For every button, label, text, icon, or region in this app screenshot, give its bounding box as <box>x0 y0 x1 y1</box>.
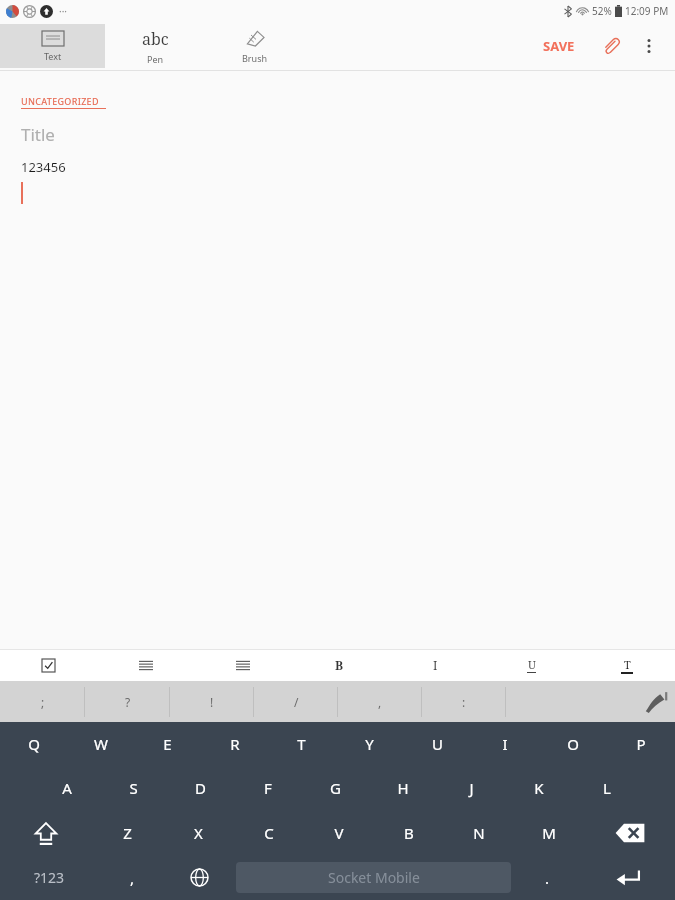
button[interactable]: P <box>607 722 675 766</box>
button[interactable]: Q <box>0 722 67 766</box>
button[interactable]: ? <box>85 681 170 722</box>
button[interactable]: UNCATEGORIZED <box>21 95 106 109</box>
button[interactable]: Format check <box>0 649 97 681</box>
button[interactable]: abc <box>105 24 205 68</box>
button[interactable]: Format I <box>387 649 483 681</box>
button[interactable]: Enter <box>581 855 675 900</box>
button[interactable]: B <box>374 810 444 855</box>
button[interactable]: G <box>301 766 369 810</box>
button[interactable]: Attach <box>595 30 627 62</box>
button[interactable]: O <box>539 722 607 766</box>
staticText: . <box>545 868 550 888</box>
staticText: F <box>264 778 272 798</box>
staticText: U <box>528 657 536 672</box>
staticText: ?123 <box>34 868 65 887</box>
button[interactable]: , <box>99 855 166 900</box>
staticText: M <box>542 823 556 843</box>
button[interactable]: / <box>254 681 338 722</box>
staticText: Title <box>21 123 55 146</box>
button[interactable]: V <box>304 810 374 855</box>
staticText: C <box>264 823 274 843</box>
staticText: J <box>469 778 474 798</box>
staticText: Text <box>44 50 62 62</box>
staticText: R <box>230 734 240 754</box>
button[interactable]: H <box>369 766 437 810</box>
staticText: T <box>624 657 631 672</box>
button[interactable]: ; <box>0 681 85 722</box>
button[interactable]: . <box>514 855 581 900</box>
button[interactable]: W <box>67 722 134 766</box>
button[interactable]: Format U <box>483 649 579 681</box>
button[interactable]: E <box>134 722 201 766</box>
staticText: K <box>534 778 544 798</box>
button[interactable]: Format list2 <box>194 649 291 681</box>
staticText: B <box>404 823 414 843</box>
staticText: V <box>334 823 344 843</box>
button[interactable]: K <box>505 766 573 810</box>
staticText: B <box>335 657 344 673</box>
button[interactable]: Shift <box>0 810 92 855</box>
staticText: O <box>567 734 579 754</box>
staticText: S <box>129 778 138 798</box>
button[interactable]: J <box>437 766 505 810</box>
staticText: I <box>502 734 508 754</box>
button[interactable]: Format list1 <box>97 649 194 681</box>
button[interactable]: Backspace <box>584 810 675 855</box>
button[interactable]: R <box>201 722 268 766</box>
button[interactable]: ! <box>170 681 254 722</box>
button[interactable]: Handwriting <box>506 681 675 722</box>
staticText: UNCATEGORIZED <box>21 95 99 107</box>
staticText: D <box>195 778 206 798</box>
button[interactable]: S <box>100 766 167 810</box>
staticText: N <box>473 823 485 843</box>
staticText: Brush <box>242 52 268 64</box>
staticText: A <box>62 778 72 798</box>
staticText: 52% <box>592 4 612 18</box>
button[interactable]: Y <box>335 722 403 766</box>
button[interactable]: U <box>403 722 471 766</box>
button[interactable]: Change language <box>166 855 233 900</box>
button[interactable]: X <box>163 810 234 855</box>
button[interactable]: T <box>268 722 335 766</box>
button[interactable]: A <box>33 766 100 810</box>
button[interactable]: F <box>234 766 301 810</box>
staticText: E <box>163 734 172 754</box>
staticText: ; <box>41 694 45 710</box>
button[interactable]: , <box>338 681 422 722</box>
staticText: , <box>130 868 135 888</box>
button[interactable]: ?123 <box>0 855 99 900</box>
button[interactable]: Z <box>92 810 163 855</box>
button[interactable]: Format B <box>291 649 387 681</box>
staticText: ··· <box>59 4 68 18</box>
button[interactable]: D <box>167 766 234 810</box>
staticText: : <box>462 694 466 710</box>
button[interactable]: N <box>444 810 514 855</box>
button[interactable]: M <box>514 810 584 855</box>
staticText: Socket Mobile <box>328 868 420 887</box>
button[interactable]: Text <box>0 24 105 68</box>
button[interactable]: Socket Mobile <box>236 862 511 893</box>
button[interactable]: L <box>573 766 641 810</box>
button[interactable]: More options <box>633 30 665 62</box>
staticText: abc <box>142 28 169 50</box>
staticText: Pen <box>147 53 164 65</box>
staticText: G <box>330 778 341 798</box>
staticText: SAVE <box>543 37 575 55</box>
button[interactable]: Format T <box>579 649 675 681</box>
button[interactable]: : <box>422 681 506 722</box>
staticText: / <box>294 694 299 710</box>
staticText: T <box>297 734 306 754</box>
staticText: W <box>94 734 108 754</box>
staticText: U <box>432 734 443 754</box>
button[interactable]: I <box>471 722 539 766</box>
staticText: I <box>433 657 438 673</box>
staticText: 12:09 PM <box>625 4 669 18</box>
button[interactable]: C <box>234 810 304 855</box>
staticText: Y <box>365 734 374 754</box>
staticText: ! <box>210 694 214 710</box>
button[interactable]: Brush <box>205 24 305 68</box>
staticText: X <box>194 823 203 843</box>
staticText: ? <box>125 694 131 710</box>
staticText: 123456 <box>21 158 66 176</box>
button[interactable]: SAVE <box>537 29 581 63</box>
